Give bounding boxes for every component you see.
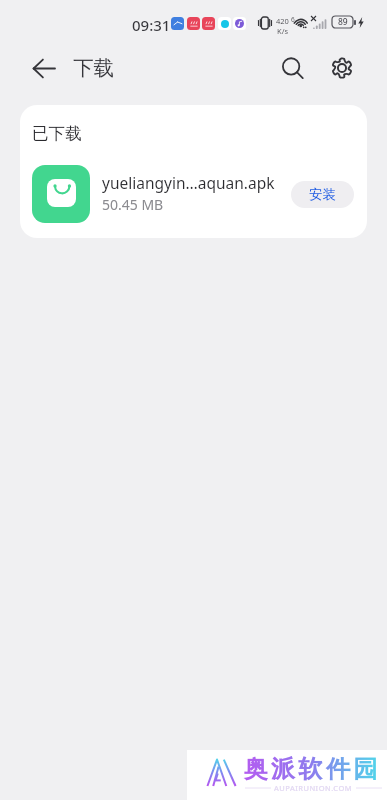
staticText: 6 — [291, 15, 295, 24]
staticText: 已下载 — [32, 123, 82, 144]
button[interactable]: Search — [270, 46, 314, 90]
staticText: 09:31 — [132, 15, 171, 35]
button[interactable]: 安装 — [291, 181, 354, 208]
button[interactable]: yueliangyin…aquan.apk — [32, 165, 354, 223]
staticText: 420 — [276, 16, 289, 26]
staticText: yueliangyin…aquan.apk — [102, 172, 275, 193]
staticText: 奥派软件园 — [242, 754, 379, 784]
staticText: 下载 — [73, 55, 114, 81]
staticText: 89 — [338, 16, 348, 28]
staticText: K/s — [277, 26, 289, 36]
staticText: 50.45 MB — [102, 195, 164, 214]
button[interactable]: Settings — [320, 46, 364, 90]
staticText: 安装 — [309, 186, 336, 203]
staticText: AUPAIRUNION.COM — [274, 783, 353, 793]
button[interactable]: Back — [22, 46, 66, 90]
